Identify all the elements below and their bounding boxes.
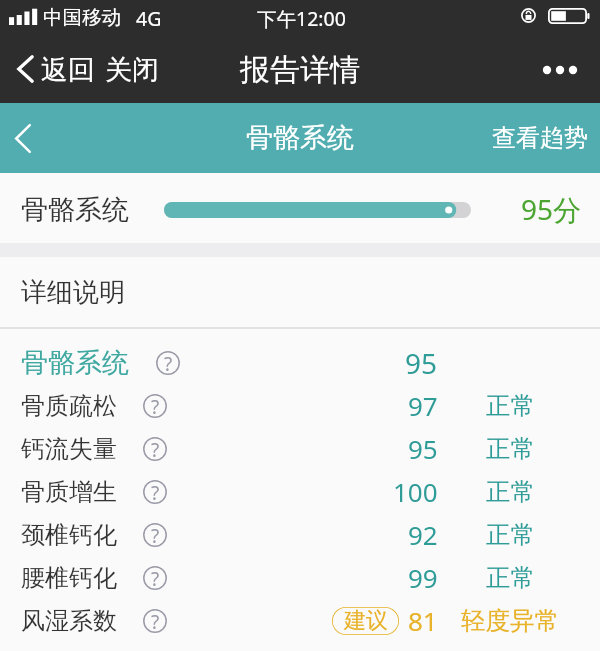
staticText: 下午12:00 (257, 5, 346, 32)
staticText: 风湿系数 (21, 606, 117, 636)
staticText: 腰椎钙化 (21, 563, 117, 593)
button[interactable]: 颈椎钙化 (0, 513, 600, 556)
button[interactable]: Help (143, 480, 167, 504)
button[interactable]: 骨骼系统 (0, 341, 600, 384)
staticText: 返回 (41, 53, 95, 87)
staticText: 骨骼系统 (246, 121, 354, 155)
staticText: 轻度异常 (461, 605, 559, 636)
staticText: ? (151, 394, 160, 418)
staticText: 查看趋势 (492, 123, 588, 153)
button[interactable]: Help (143, 437, 167, 461)
button[interactable]: Help (156, 351, 180, 375)
staticText: 骨骼系统 (21, 346, 129, 380)
button[interactable]: 关闭 (93, 36, 171, 103)
staticText: 95分 (521, 190, 582, 228)
button[interactable]: 钙流失量 (0, 427, 600, 470)
button[interactable]: 查看趋势 (476, 103, 600, 173)
staticText: 详细说明 (21, 276, 125, 309)
staticText: 钙流失量 (21, 434, 117, 464)
button[interactable]: Help (143, 394, 167, 418)
staticText: ? (151, 523, 160, 547)
staticText: 正常 (486, 519, 535, 550)
staticText: 建议 (344, 607, 388, 635)
staticText: 关闭 (105, 53, 159, 87)
staticText: 骨骼系统 (21, 193, 129, 227)
staticText: 骨质增生 (21, 477, 117, 507)
staticText: ? (151, 437, 160, 461)
staticText: 正常 (486, 390, 535, 421)
staticText: 95 (405, 344, 438, 382)
staticText: ? (151, 566, 160, 590)
button[interactable]: More options (538, 48, 582, 92)
staticText: 报告详情 (240, 51, 360, 89)
button[interactable]: Help (143, 609, 167, 633)
staticText: ? (151, 609, 160, 633)
button[interactable]: 骨质疏松 (0, 384, 600, 427)
staticText: 正常 (486, 562, 535, 593)
staticText: 99 (408, 560, 438, 595)
button[interactable]: Help (143, 566, 167, 590)
staticText: 92 (408, 517, 438, 552)
staticText: 100 (393, 474, 438, 509)
staticText: 97 (408, 388, 438, 423)
staticText: 81 (408, 603, 438, 638)
staticText: ? (164, 351, 173, 375)
staticText: 中国移动 (43, 5, 121, 30)
button[interactable]: 风湿系数 (0, 599, 600, 642)
staticText: 颈椎钙化 (21, 520, 117, 550)
button[interactable]: 骨质增生 (0, 470, 600, 513)
staticText: 正常 (486, 433, 535, 464)
button[interactable]: Back (0, 114, 48, 162)
button[interactable]: 返回 (0, 36, 98, 103)
staticText: 正常 (486, 476, 535, 507)
staticText: 骨质疏松 (21, 391, 117, 421)
staticText: 95 (408, 431, 438, 466)
staticText: ? (151, 480, 160, 504)
button[interactable]: Help (143, 523, 167, 547)
button[interactable]: 腰椎钙化 (0, 556, 600, 599)
staticText: 4G (136, 5, 162, 32)
